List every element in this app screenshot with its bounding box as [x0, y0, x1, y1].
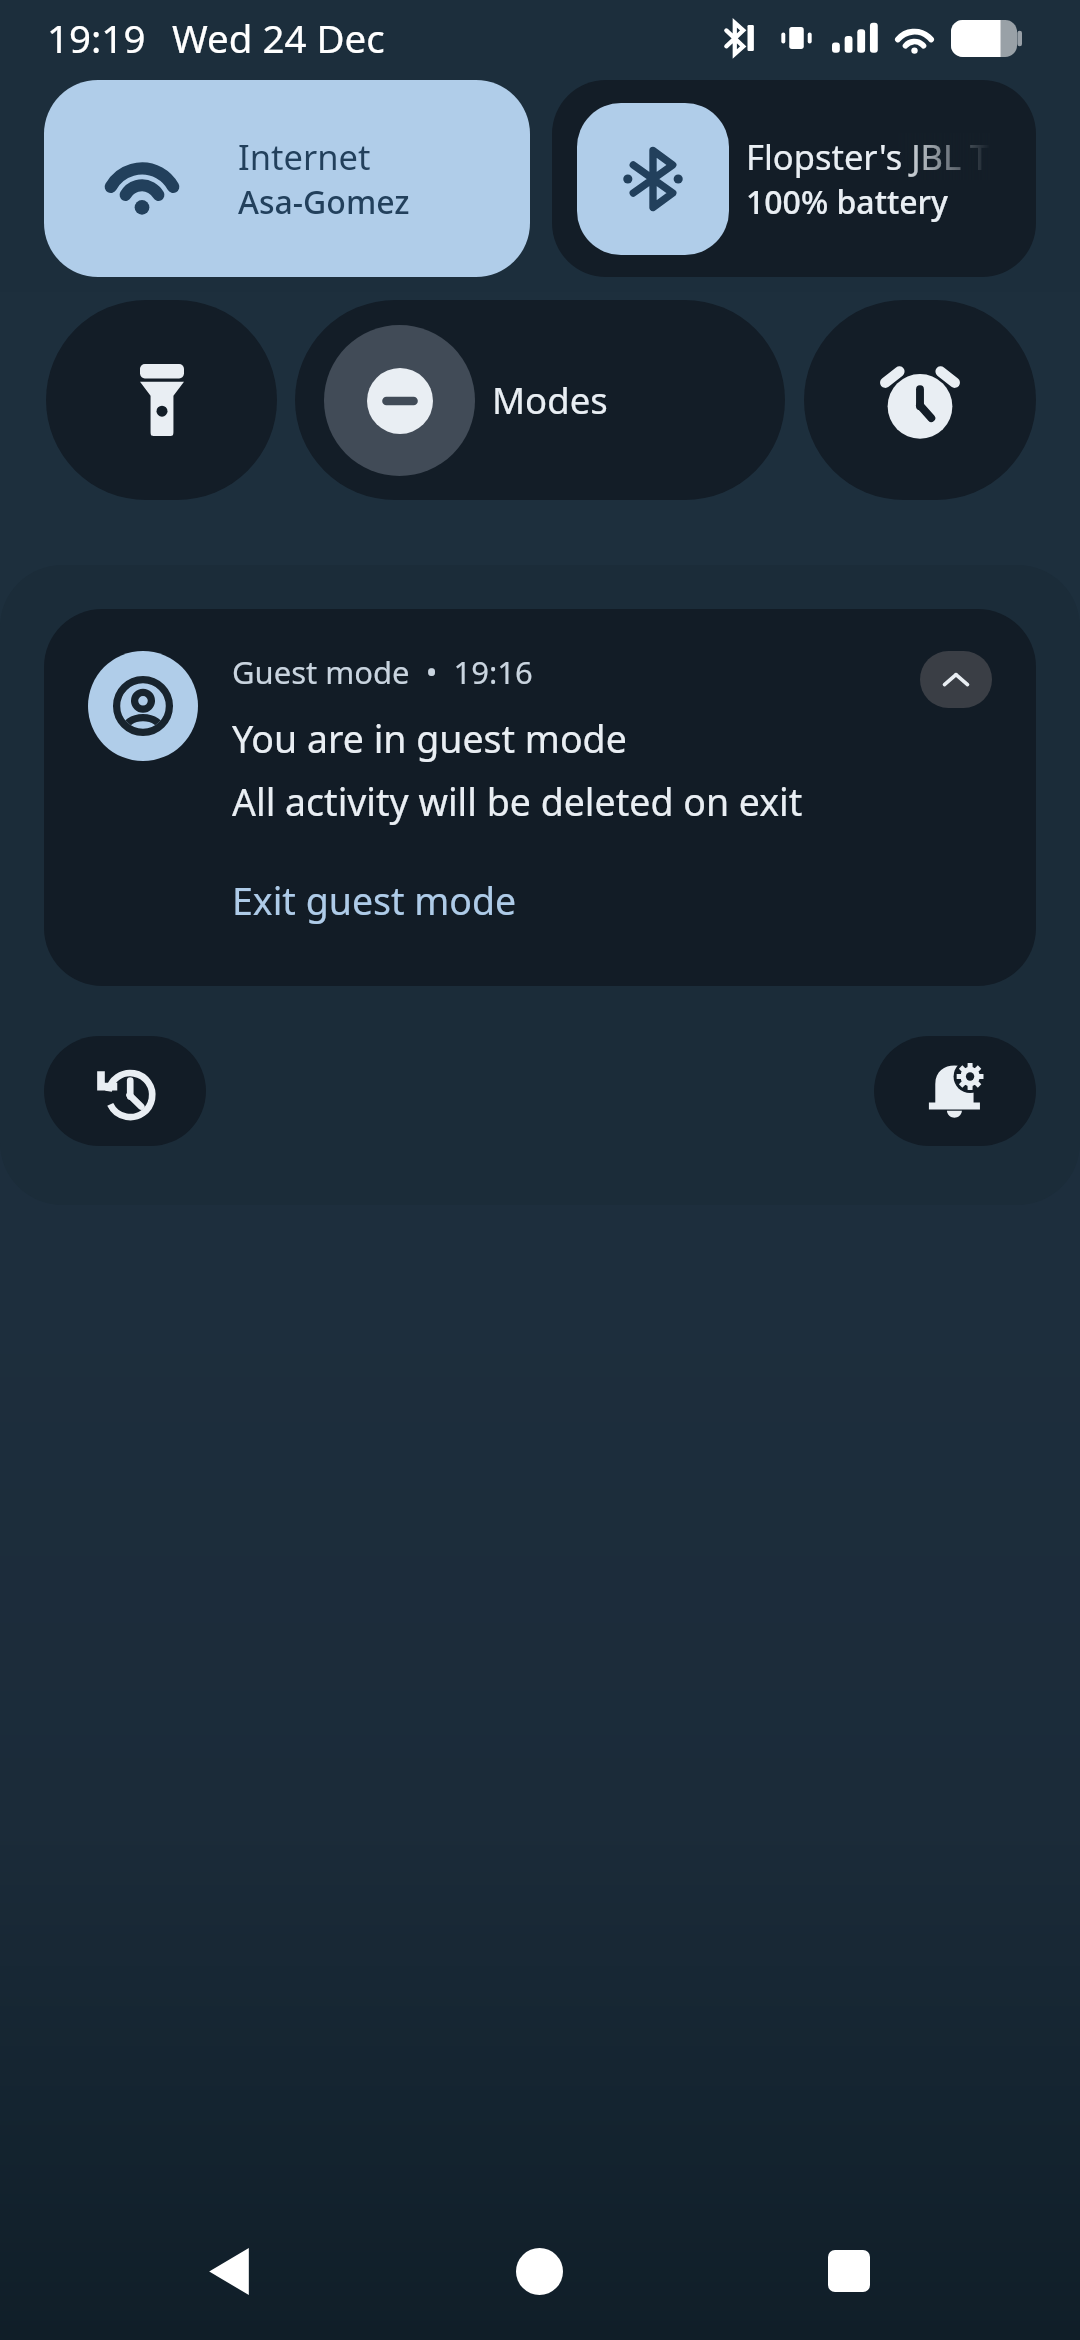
button[interactable]: Internet: [44, 80, 530, 277]
staticText: 19:19: [47, 12, 146, 64]
button[interactable]: Flashlight: [46, 300, 277, 500]
staticText: Modes: [492, 375, 608, 425]
staticText: Flopster's JBL T: [746, 133, 990, 180]
staticText: Internet: [238, 133, 371, 180]
button[interactable]: Guest mode • 19:16: [44, 609, 1036, 986]
button[interactable]: Modes: [295, 300, 785, 500]
button[interactable]: Back: [169, 2211, 289, 2331]
staticText: All activity will be deleted on exit: [232, 776, 803, 827]
button[interactable]: Home: [479, 2211, 599, 2331]
staticText: Wed 24 Dec: [172, 12, 385, 64]
staticText: Guest mode • 19:16: [232, 651, 533, 693]
button[interactable]: Collapse: [920, 651, 992, 708]
staticText: Asa-Gomez: [238, 180, 410, 224]
staticText: 100% battery: [746, 180, 948, 224]
staticText: Exit guest mode: [232, 875, 517, 926]
staticText: You are in guest mode: [232, 713, 627, 764]
button[interactable]: Alarm: [804, 300, 1036, 500]
button[interactable]: Notification settings: [874, 1036, 1036, 1146]
button[interactable]: Notification history: [44, 1036, 206, 1146]
button[interactable]: Recents: [789, 2211, 909, 2331]
button[interactable]: Flopster's JBL T: [552, 80, 1036, 277]
